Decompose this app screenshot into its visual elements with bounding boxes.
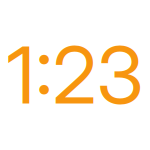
staticText: 1:23 — [6, 27, 143, 123]
